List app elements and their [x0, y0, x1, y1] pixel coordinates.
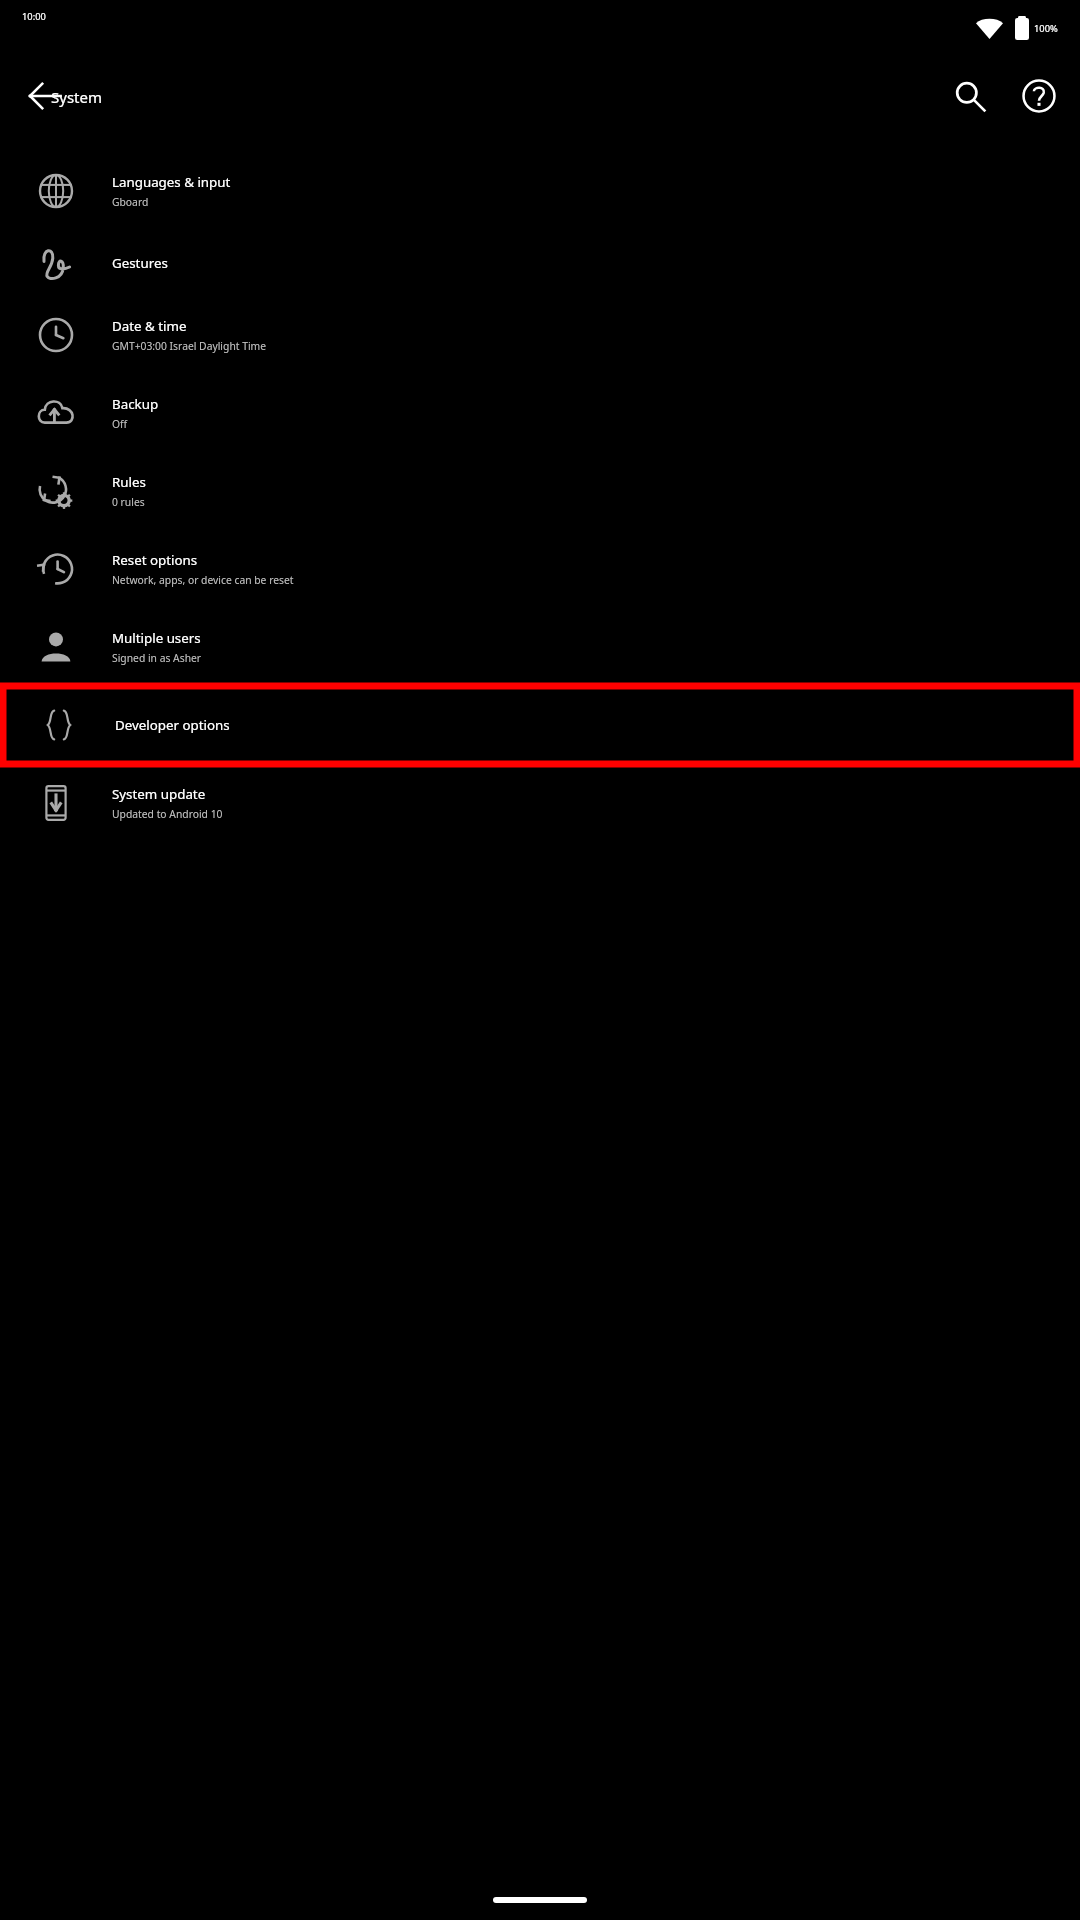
staticText: 10:00 [22, 10, 46, 23]
button[interactable]: Backup [0, 374, 1080, 452]
staticText: Gboard [112, 195, 149, 209]
staticText: 0 rules [112, 495, 145, 509]
button[interactable]: Rules [0, 452, 1080, 530]
button[interactable]: Date & time [0, 296, 1080, 374]
staticText: Off [112, 417, 128, 431]
staticText: GMT+03:00 Israel Daylight Time [112, 339, 267, 353]
button[interactable]: Multiple users [0, 608, 1080, 686]
staticText: Updated to Android 10 [112, 807, 223, 821]
staticText: Developer options [115, 716, 230, 734]
staticText: Gestures [112, 254, 168, 272]
staticText: Network, apps, or device can be reset [112, 573, 294, 587]
staticText: System update [112, 785, 206, 803]
staticText: Date & time [112, 317, 187, 335]
button[interactable]: Back [16, 67, 74, 125]
staticText: System [51, 87, 102, 107]
staticText: Languages & input [112, 173, 231, 191]
staticText: 100% [1034, 22, 1058, 35]
staticText: Multiple users [112, 629, 201, 647]
staticText: Reset options [112, 551, 198, 569]
button[interactable]: Languages & input [0, 152, 1080, 230]
staticText: Rules [112, 473, 146, 491]
button[interactable]: Help [1010, 67, 1068, 125]
staticText: Signed in as Asher [112, 651, 202, 665]
button[interactable]: Reset options [0, 530, 1080, 608]
button[interactable]: System update [0, 764, 1080, 842]
button[interactable]: Gestures [0, 230, 1080, 296]
button[interactable]: Search [941, 67, 999, 125]
button[interactable]: Developer options [3, 686, 1077, 764]
staticText: Backup [112, 395, 159, 413]
